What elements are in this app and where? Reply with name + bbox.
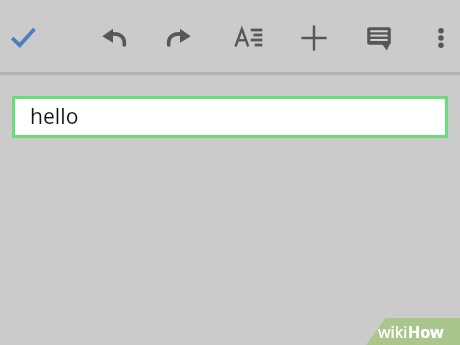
button[interactable]: hello [12,96,448,138]
staticText: hello [30,102,79,131]
button[interactable]: Text formatting [226,15,272,61]
button[interactable]: Insert [291,15,337,61]
button[interactable]: More options [421,18,460,58]
button[interactable]: Undo [91,15,137,61]
staticText: wiki [378,321,408,343]
button[interactable]: Done [0,15,46,61]
button[interactable]: Redo [156,15,202,61]
button[interactable]: Comment [356,15,402,61]
staticText: How [408,321,444,343]
